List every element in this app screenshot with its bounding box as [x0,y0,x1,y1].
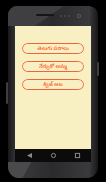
button[interactable]: నేర్చుకో అమ్మ [22,61,84,72]
button[interactable]: క్విజ్ ఆట [22,79,84,90]
button[interactable]: Power [97,62,99,76]
staticText: క్విజ్ ఆట [43,81,63,89]
button[interactable]: Back [19,149,39,162]
staticText: తెలుగు పదాలు [37,45,69,53]
button[interactable]: Home [43,149,63,162]
button[interactable]: తెలుగు పదాలు [22,43,84,54]
staticText: నేర్చుకో అమ్మ [39,63,67,71]
button[interactable]: Volume [6,82,8,104]
button[interactable]: Recent apps [67,149,87,162]
